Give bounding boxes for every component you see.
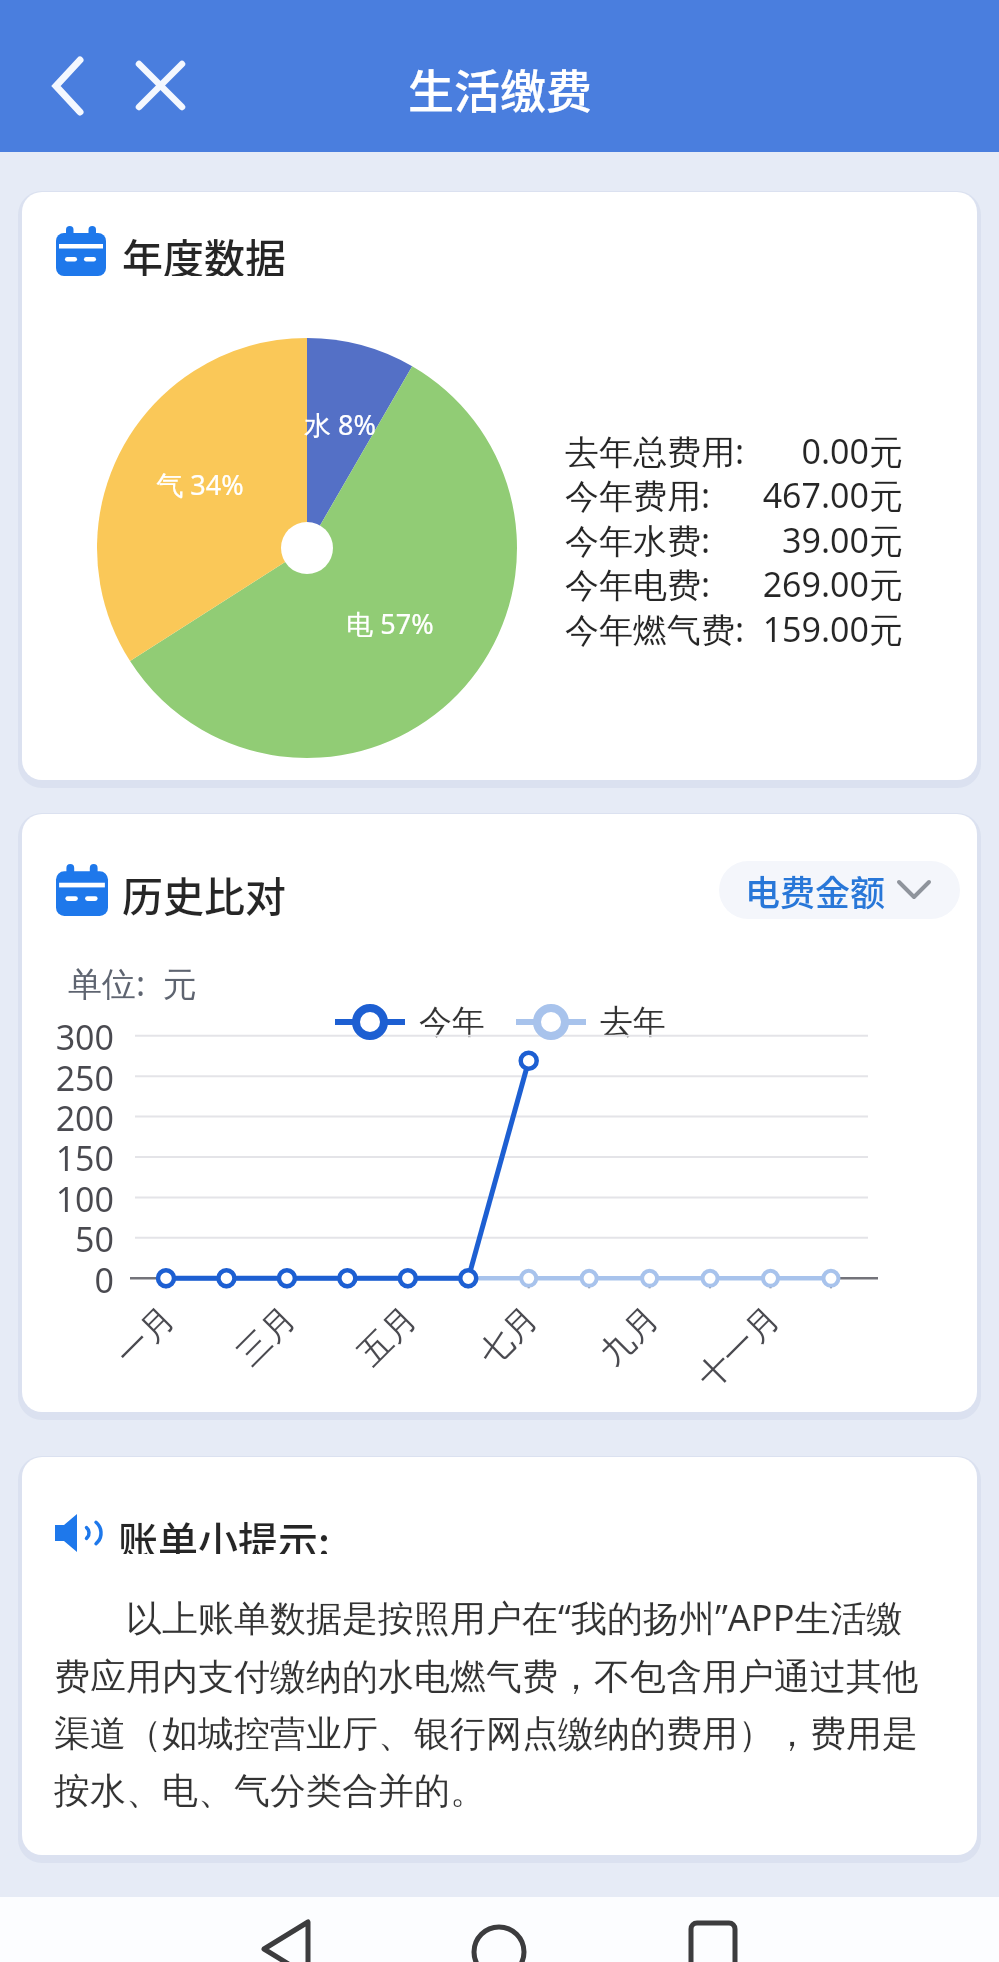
staticText: 0.00元 <box>801 428 903 472</box>
button[interactable] <box>120 46 200 126</box>
staticText: 一月 <box>107 1298 182 1373</box>
button[interactable] <box>240 1897 350 1962</box>
button[interactable] <box>445 1897 555 1962</box>
staticText: 100 <box>55 1176 114 1218</box>
staticText: 电费金额 <box>745 865 886 916</box>
staticText: 电 57% <box>346 605 434 642</box>
staticText: 九月 <box>591 1298 666 1373</box>
staticText: 以上账单数据是按照用户在“我的扬州”APP生活缴 费应用内支付缴纳的水电燃气费，… <box>54 1593 964 1814</box>
button[interactable]: 电费金额 <box>719 861 960 919</box>
button[interactable] <box>650 1897 760 1962</box>
staticText: 生活缴费 <box>408 55 592 122</box>
staticText: 159.00元 <box>762 606 903 650</box>
staticText: 水 8% <box>304 406 376 443</box>
staticText: 200 <box>55 1095 114 1137</box>
staticText: 39.00元 <box>782 517 903 561</box>
staticText: 今年电费: <box>565 561 711 605</box>
staticText: 150 <box>55 1135 114 1177</box>
staticText: 气 34% <box>156 466 244 503</box>
staticText: 年度数据 <box>122 226 286 276</box>
staticText: 历史比对 <box>122 864 286 916</box>
staticText: 250 <box>55 1055 114 1097</box>
staticText: 300 <box>55 1014 114 1056</box>
staticText: 去年总费用: <box>565 428 745 472</box>
staticText: 今年费用: <box>565 472 711 516</box>
staticText: 十一月 <box>689 1298 787 1396</box>
button[interactable] <box>28 46 108 126</box>
staticText: 单位: 元 <box>68 960 197 1000</box>
staticText: 三月 <box>228 1298 303 1373</box>
staticText: 今年燃气费: <box>565 606 745 650</box>
staticText: 467.00元 <box>762 472 903 516</box>
staticText: 七月 <box>470 1298 545 1373</box>
staticText: 50 <box>75 1216 114 1258</box>
staticText: 269.00元 <box>762 561 903 605</box>
staticText: 今年 <box>419 1001 485 1043</box>
staticText: 去年 <box>600 1001 666 1043</box>
staticText: 0 <box>94 1257 114 1299</box>
staticText: 账单小提示: <box>118 1510 330 1554</box>
staticText: 五月 <box>349 1298 424 1373</box>
staticText: 今年水费: <box>565 517 711 561</box>
